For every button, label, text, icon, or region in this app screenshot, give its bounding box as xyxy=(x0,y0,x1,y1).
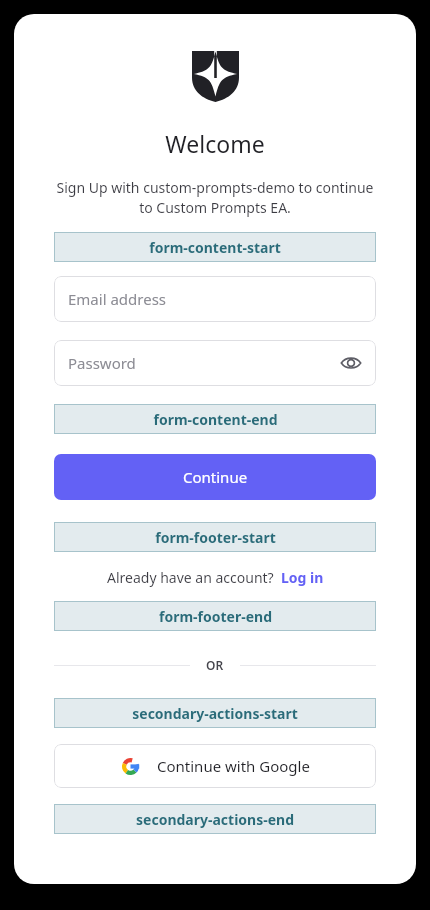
button[interactable]: secondary-actions-start xyxy=(54,698,376,728)
button[interactable]: form-footer-end xyxy=(54,601,376,631)
staticText: secondary-actions-start xyxy=(132,704,298,723)
button[interactable]: form-content-start xyxy=(54,232,376,262)
button[interactable]: secondary-actions-end xyxy=(54,804,376,834)
staticText: Sign Up with custom-prompts-demo to cont… xyxy=(54,178,376,218)
staticText: Continue with Google xyxy=(157,756,310,776)
staticText: form-content-end xyxy=(153,410,278,429)
button[interactable]: Show password xyxy=(340,352,362,374)
button[interactable]: form-content-end xyxy=(54,404,376,434)
button[interactable]: Continue with Google xyxy=(54,744,376,788)
button[interactable]: Email address xyxy=(54,276,376,322)
staticText: OR xyxy=(206,657,224,673)
staticText: Already have an account? xyxy=(107,568,274,587)
button[interactable]: Log in xyxy=(281,568,324,587)
staticText: Password xyxy=(68,353,136,373)
staticText: Continue xyxy=(183,467,248,487)
staticText: Email address xyxy=(68,289,167,309)
button[interactable]: Password xyxy=(54,340,376,386)
button[interactable]: Continue xyxy=(54,454,376,500)
staticText: form-content-start xyxy=(149,238,281,257)
staticText: secondary-actions-end xyxy=(136,810,294,829)
button[interactable]: form-footer-start xyxy=(54,522,376,552)
staticText: form-footer-end xyxy=(159,607,272,626)
staticText: form-footer-start xyxy=(155,528,276,547)
staticText: Log in xyxy=(281,568,324,587)
staticText: Welcome xyxy=(165,128,265,159)
